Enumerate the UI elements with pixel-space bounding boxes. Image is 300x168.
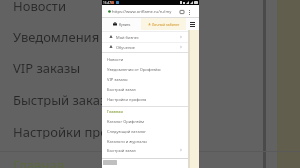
button[interactable]: Настройки профиля (102, 94, 188, 104)
staticText: VIP заказы (13, 59, 81, 75)
button[interactable]: Меню (186, 18, 199, 30)
staticText: Каталог Орифлэйм (107, 119, 145, 124)
staticText: Главная (107, 109, 123, 114)
button[interactable]: Новости (0, 0, 300, 13)
button[interactable]: Настройки про (0, 123, 300, 139)
button[interactable]: Следующий каталог (102, 126, 188, 136)
button[interactable]: Вкладки (179, 9, 185, 15)
staticText: Уведомления о (13, 28, 111, 44)
staticText: 16:47 (103, 1, 112, 5)
staticText: Уведомления от Орифлэйм (107, 67, 161, 72)
staticText: Новости (13, 0, 66, 13)
staticText: Быстрый заказ (13, 91, 107, 107)
staticText: Обучение (116, 45, 136, 50)
button[interactable]: https://www.oriflame.ru/ru/my (102, 5, 199, 18)
staticText: Купить (119, 22, 131, 27)
button[interactable]: Быстрый заказ (102, 145, 188, 155)
staticText: Следующий каталог (107, 129, 147, 134)
button[interactable]: Быстрый заказ (102, 84, 188, 94)
button[interactable]: Мой бизнес (102, 32, 188, 42)
button[interactable]: Купить (102, 18, 141, 30)
staticText: Мой бизнес (116, 35, 139, 40)
staticText: Настройки профиля (107, 97, 147, 102)
button[interactable]: Личный кабинет (141, 18, 186, 30)
staticText: Личный кабинет (152, 22, 180, 27)
staticText: Быстрый заказ (107, 148, 136, 153)
button[interactable]: VIP заказы (0, 59, 300, 75)
button[interactable]: Главная (102, 106, 188, 116)
button[interactable]: Каталоги и журналы (102, 136, 188, 146)
staticText: Настройки про (13, 123, 108, 139)
button[interactable]: Уведомления от Орифлэйм (102, 64, 188, 74)
button[interactable]: Быстрый заказ (0, 91, 300, 107)
button[interactable]: Новости (102, 54, 188, 64)
button[interactable]: Уведомления о (0, 28, 300, 44)
staticText: Быстрый заказ (107, 87, 136, 92)
button[interactable]: Каталог Орифлэйм (102, 116, 188, 126)
button[interactable]: Главная (0, 156, 300, 168)
button[interactable]: Ещё (187, 8, 192, 16)
staticText: Новости (107, 57, 124, 62)
staticText: https://www.oriflame.ru/ru/my (112, 9, 172, 15)
staticText: Каталоги и журналы (107, 139, 147, 144)
button[interactable]: Обучение (102, 42, 188, 52)
button[interactable]: VIP заказы (102, 74, 188, 84)
staticText: Главная (13, 156, 65, 168)
staticText: VIP заказы (107, 77, 128, 82)
